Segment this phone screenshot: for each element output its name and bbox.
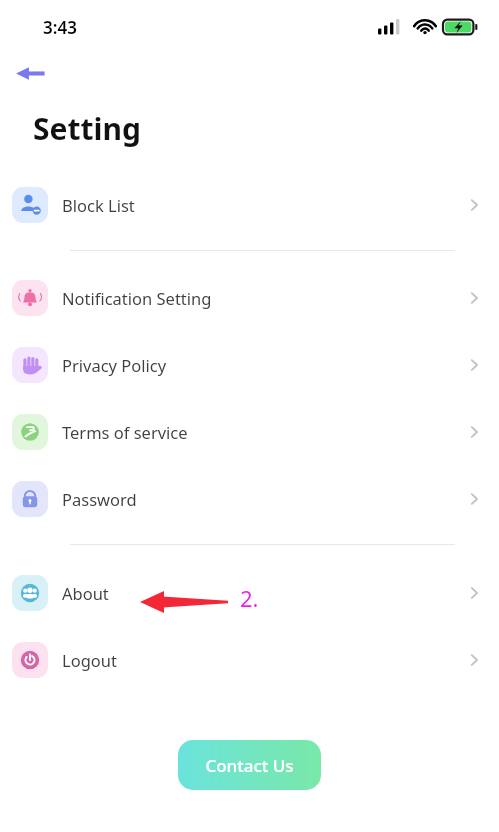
button[interactable]: Block List	[0, 185, 499, 225]
staticText: Setting	[33, 108, 141, 149]
button[interactable]: About	[0, 573, 499, 613]
staticText: About	[62, 582, 109, 604]
staticText: Notification Setting	[62, 287, 212, 309]
button[interactable]: Contact Us	[178, 740, 321, 790]
staticText: Password	[62, 488, 137, 510]
button[interactable]: Back	[14, 54, 58, 92]
staticText: Terms of service	[62, 421, 188, 443]
button[interactable]: Privacy Policy	[0, 345, 499, 385]
staticText: Privacy Policy	[62, 354, 167, 376]
staticText: 3:43	[43, 16, 77, 39]
button[interactable]: Terms of service	[0, 412, 499, 452]
staticText: Block List	[62, 194, 135, 216]
button[interactable]: Notification Setting	[0, 278, 499, 318]
staticText: Contact Us	[205, 754, 294, 777]
staticText: Logout	[62, 649, 117, 671]
staticText: 2.	[240, 583, 259, 613]
button[interactable]: Password	[0, 479, 499, 519]
button[interactable]: Logout	[0, 640, 499, 680]
